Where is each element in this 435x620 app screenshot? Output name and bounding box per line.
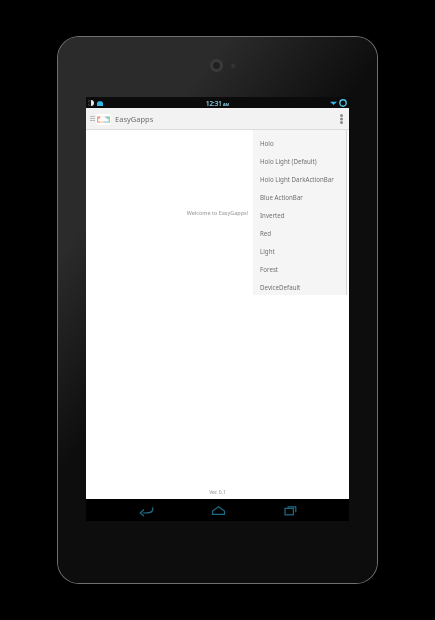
button[interactable]: More options	[333, 108, 349, 130]
button[interactable]: DeviceDefault	[253, 278, 347, 295]
staticText: 12:31	[206, 99, 222, 107]
staticText: Blue ActionBar	[260, 193, 303, 201]
staticText: Inverted	[260, 211, 285, 219]
button[interactable]: Inverted	[253, 206, 347, 224]
staticText: Forest	[260, 265, 279, 273]
staticText: Red	[260, 229, 272, 237]
staticText: DeviceDefault	[260, 283, 301, 291]
button[interactable]: Blue ActionBar	[253, 188, 347, 206]
button[interactable]: Back	[129, 499, 163, 521]
staticText: Light	[260, 247, 275, 255]
button[interactable]: Forest	[253, 260, 347, 278]
staticText: Holo Light (Default)	[260, 157, 317, 165]
staticText: Ver. 0.1	[86, 489, 349, 496]
button[interactable]: Red	[253, 224, 347, 242]
staticText: AM	[223, 102, 230, 107]
staticText: Holo Light DarkActionBar	[260, 175, 334, 183]
staticText: EasyGapps	[115, 114, 154, 124]
button[interactable]: Navigate up	[88, 111, 96, 127]
staticText: Holo	[260, 139, 274, 147]
staticText: Welcome to EasyGapps!	[86, 209, 349, 216]
button[interactable]: Holo Light (Default)	[253, 152, 347, 170]
button[interactable]: Holo Light DarkActionBar	[253, 170, 347, 188]
button[interactable]: Home	[201, 499, 235, 521]
button[interactable]: Holo	[253, 134, 347, 152]
button[interactable]: Light	[253, 242, 347, 260]
button[interactable]: Recent apps	[273, 499, 307, 521]
